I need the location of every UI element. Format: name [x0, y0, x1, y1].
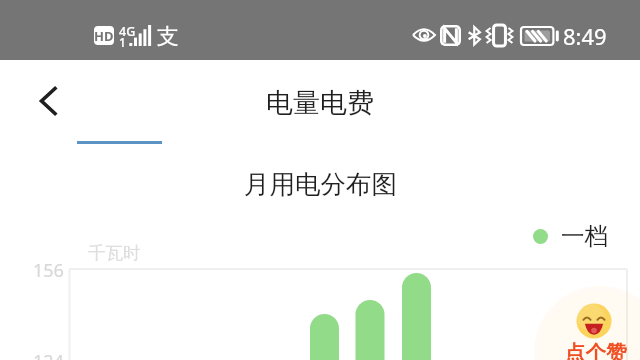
staticText: 千瓦时 [88, 242, 141, 264]
staticText: 一档 [561, 221, 608, 251]
staticText: 点个赞 [565, 340, 627, 360]
staticText: 4G [119, 23, 136, 40]
staticText: 8:49 [563, 21, 607, 51]
button[interactable]: Back [26, 80, 68, 122]
staticText: 支 [157, 23, 179, 51]
staticText: 电量电费 [266, 86, 374, 120]
staticText: 1 [119, 34, 126, 50]
button[interactable] [57, 118, 182, 148]
staticText: 124 [33, 349, 64, 360]
staticText: 156 [33, 258, 64, 283]
staticText: 月用电分布图 [244, 168, 397, 200]
button[interactable]: 一档 [533, 221, 608, 251]
staticText: HD [94, 27, 114, 45]
